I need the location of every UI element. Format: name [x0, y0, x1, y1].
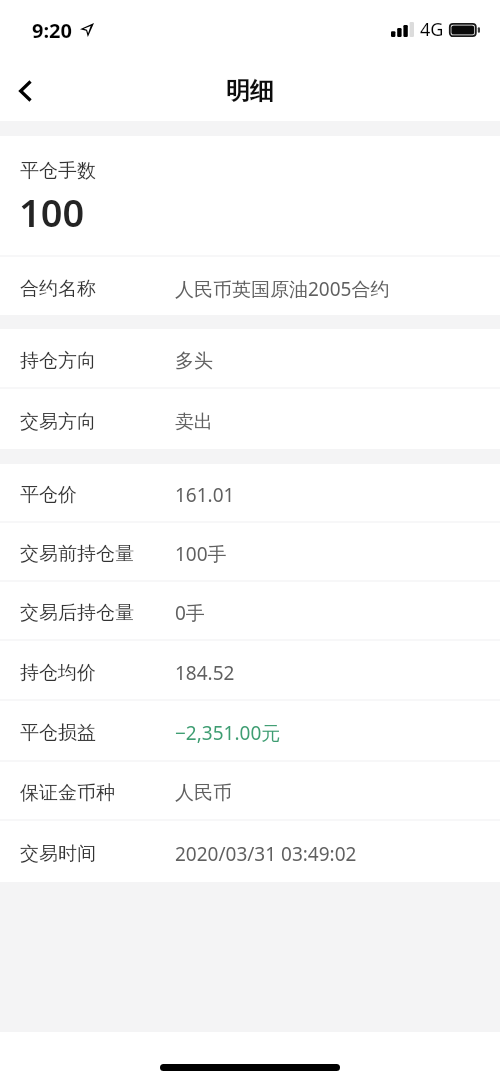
staticText: 0手	[175, 600, 205, 626]
staticText: 明细	[226, 76, 274, 106]
staticText: 平仓损益	[20, 721, 96, 745]
button[interactable]: Back	[0, 65, 48, 113]
button[interactable]: 交易时间	[0, 821, 500, 882]
staticText: 184.52	[175, 660, 235, 686]
button[interactable]: 合约名称	[0, 257, 500, 315]
staticText: 交易时间	[20, 842, 96, 866]
staticText: 卖出	[175, 410, 213, 434]
staticText: 持仓均价	[20, 661, 96, 685]
button[interactable]: 交易前持仓量	[0, 523, 500, 580]
button[interactable]: 平仓损益	[0, 701, 500, 760]
staticText: −2,351.00元	[175, 720, 281, 746]
staticText: 合约名称	[20, 277, 96, 301]
button[interactable]: 持仓均价	[0, 641, 500, 699]
button[interactable]: 交易后持仓量	[0, 582, 500, 639]
button[interactable]: 交易方向	[0, 389, 500, 449]
staticText: 人民币	[175, 781, 232, 805]
staticText: 161.01	[175, 482, 235, 508]
staticText: 2020/03/31 03:49:02	[175, 841, 357, 867]
staticText: 100手	[175, 541, 227, 567]
button[interactable]: 平仓价	[0, 464, 500, 521]
staticText: 保证金币种	[20, 781, 115, 805]
staticText: 人民币英国原油2005合约	[175, 276, 390, 302]
staticText: 交易方向	[20, 410, 96, 434]
staticText: 交易前持仓量	[20, 542, 134, 566]
staticText: 9:20	[32, 17, 72, 44]
staticText: 交易后持仓量	[20, 601, 134, 625]
staticText: 4G	[420, 17, 444, 42]
staticText: 100	[19, 186, 85, 238]
staticText: 平仓手数	[20, 159, 96, 183]
button[interactable]: 保证金币种	[0, 762, 500, 819]
staticText: 多头	[175, 349, 213, 373]
staticText: 持仓方向	[20, 349, 96, 373]
button[interactable]: 持仓方向	[0, 329, 500, 387]
staticText: 平仓价	[20, 483, 77, 507]
